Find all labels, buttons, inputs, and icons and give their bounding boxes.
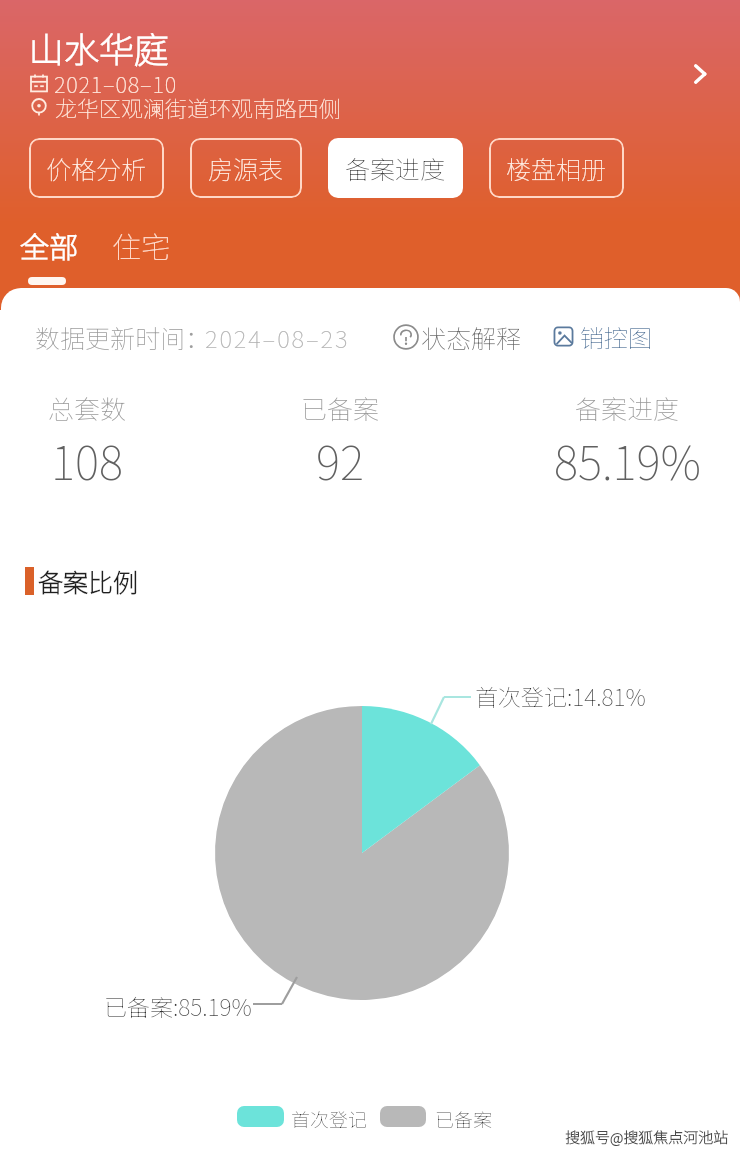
- staticText: 已备案: [301, 389, 380, 427]
- staticText: 首次登记:14.81%: [475, 679, 646, 712]
- staticText: 2024–08–23: [205, 320, 350, 355]
- staticText: 房源表: [208, 150, 284, 186]
- button[interactable]: 楼盘相册: [489, 138, 624, 198]
- staticText: 全部: [20, 224, 79, 266]
- button[interactable]: 查看楼盘详情: [678, 52, 722, 96]
- button[interactable]: 全部: [8, 216, 91, 274]
- staticText: 价格分析: [46, 150, 147, 186]
- staticText: 已备案: [435, 1105, 493, 1133]
- staticText: 首次登记: [291, 1105, 368, 1133]
- button[interactable]: 备案进度: [328, 138, 463, 198]
- staticText: 92: [316, 427, 364, 494]
- staticText: 2021–08–10: [54, 67, 177, 99]
- staticText: 85.19%: [554, 427, 701, 494]
- staticText: 备案进度: [345, 150, 446, 186]
- staticText: 销控图: [580, 319, 652, 354]
- button[interactable]: 住宅: [100, 216, 183, 274]
- staticText: 备案进度: [575, 389, 680, 427]
- staticText: 山水华庭: [29, 22, 170, 73]
- button[interactable]: 销控图: [553, 319, 652, 354]
- staticText: 备案比例: [38, 563, 139, 599]
- button[interactable]: 状态解释: [393, 319, 522, 355]
- staticText: 住宅: [112, 224, 171, 266]
- staticText: 108: [51, 427, 123, 494]
- staticText: 搜狐号@搜狐焦点河池站: [565, 1126, 729, 1148]
- button[interactable]: 价格分析: [29, 138, 164, 198]
- staticText: 龙华区观澜街道环观南路西侧: [55, 91, 342, 123]
- staticText: 楼盘相册: [506, 150, 607, 186]
- staticText: 数据更新时间：: [35, 319, 211, 355]
- staticText: 已备案:85.19%: [104, 989, 252, 1022]
- staticText: 总套数: [48, 389, 127, 427]
- button[interactable]: 房源表: [190, 138, 302, 198]
- staticText: 状态解释: [421, 319, 522, 355]
